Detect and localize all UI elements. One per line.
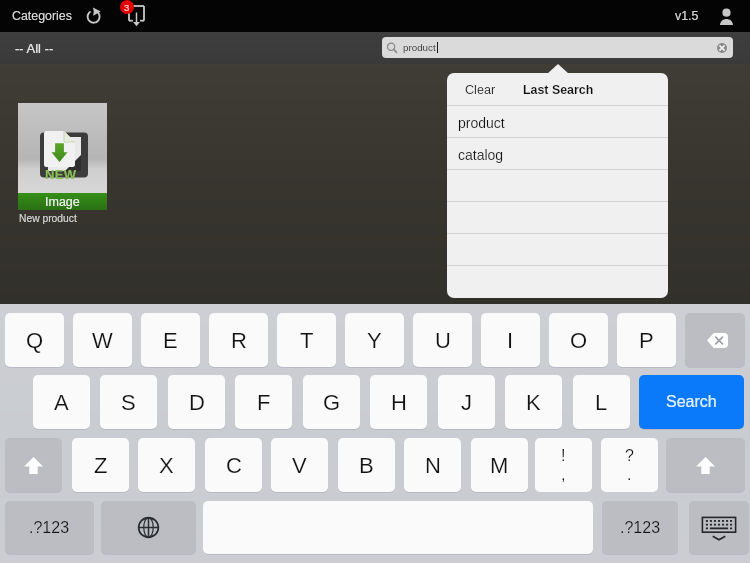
button[interactable]: Search xyxy=(639,375,744,429)
staticText: J xyxy=(461,390,472,415)
button[interactable]: C xyxy=(205,438,262,492)
staticText: F xyxy=(257,390,271,415)
staticText: catalog xyxy=(458,147,504,163)
staticText: A xyxy=(54,390,69,415)
button[interactable]: U xyxy=(413,313,472,367)
staticText: O xyxy=(570,328,588,353)
staticText: v1.5 xyxy=(675,9,699,23)
staticText: Search xyxy=(666,393,717,411)
staticText: Y xyxy=(367,328,382,353)
staticText: U xyxy=(435,328,451,353)
staticText: Last Search xyxy=(523,83,594,97)
staticText: R xyxy=(231,328,247,353)
staticText: ! xyxy=(561,447,566,465)
staticText: 3 xyxy=(124,2,130,13)
button[interactable]: -- All -- xyxy=(0,36,64,61)
staticText: -- All -- xyxy=(15,41,54,56)
staticText: L xyxy=(595,390,608,415)
button[interactable]: product xyxy=(447,106,668,137)
staticText: NEW xyxy=(45,167,77,182)
staticText: New product xyxy=(19,213,77,225)
button[interactable]: Z xyxy=(72,438,129,492)
button[interactable]: V xyxy=(271,438,328,492)
button[interactable]: Hide keyboard xyxy=(689,501,749,554)
button[interactable]: NEW xyxy=(18,103,107,210)
button[interactable]: .?123 xyxy=(5,501,94,554)
button[interactable] xyxy=(447,266,668,297)
button[interactable]: R xyxy=(209,313,268,367)
button[interactable]: T xyxy=(277,313,336,367)
staticText: product xyxy=(403,42,436,53)
button[interactable]: .?123 xyxy=(602,501,678,554)
staticText: Clear xyxy=(465,83,496,97)
staticText: I xyxy=(507,328,514,353)
staticText: S xyxy=(121,390,136,415)
staticText: Image xyxy=(45,195,80,209)
button[interactable]: N xyxy=(404,438,461,492)
button[interactable]: ! xyxy=(535,438,592,492)
button[interactable]: L xyxy=(573,375,630,429)
staticText: .?123 xyxy=(29,519,70,537)
button[interactable]: Backspace xyxy=(685,313,745,367)
button[interactable]: O xyxy=(549,313,608,367)
button[interactable]: Shift xyxy=(666,438,745,492)
button[interactable]: Clear xyxy=(458,78,503,102)
staticText: E xyxy=(163,328,178,353)
button[interactable]: Shift xyxy=(5,438,62,492)
staticText: P xyxy=(639,328,654,353)
staticText: .?123 xyxy=(620,519,661,537)
button[interactable]: catalog xyxy=(447,138,668,169)
button[interactable]: I xyxy=(481,313,540,367)
button[interactable]: W xyxy=(73,313,132,367)
button[interactable]: product xyxy=(382,37,733,58)
staticText: W xyxy=(92,328,113,353)
button[interactable]: X xyxy=(138,438,195,492)
staticText: C xyxy=(226,453,242,478)
button[interactable]: Downloads xyxy=(118,0,148,32)
button[interactable]: v1.5 xyxy=(671,4,703,28)
staticText: H xyxy=(391,390,407,415)
button[interactable]: Y xyxy=(345,313,404,367)
button[interactable]: K xyxy=(505,375,562,429)
button[interactable]: G xyxy=(303,375,360,429)
staticText: K xyxy=(526,390,541,415)
staticText: . xyxy=(627,466,632,484)
button[interactable]: H xyxy=(370,375,427,429)
staticText: Categories xyxy=(12,9,72,23)
button[interactable]: Switch keyboard xyxy=(101,501,196,554)
button[interactable]: Refresh xyxy=(82,4,106,28)
staticText: M xyxy=(490,453,509,478)
button[interactable]: D xyxy=(168,375,225,429)
button[interactable]: S xyxy=(100,375,157,429)
button[interactable]: B xyxy=(338,438,395,492)
staticText: T xyxy=(300,328,314,353)
button[interactable]: E xyxy=(141,313,200,367)
button[interactable]: Q xyxy=(5,313,64,367)
staticText: V xyxy=(292,453,307,478)
button[interactable]: Clear search xyxy=(717,43,727,53)
staticText: Z xyxy=(94,453,108,478)
staticText: , xyxy=(561,466,566,484)
staticText: N xyxy=(425,453,441,478)
staticText: B xyxy=(359,453,374,478)
staticText: Q xyxy=(26,328,44,353)
button[interactable]: P xyxy=(617,313,676,367)
staticText: X xyxy=(159,453,174,478)
staticText: ? xyxy=(625,447,634,465)
button[interactable]: ? xyxy=(601,438,658,492)
staticText: D xyxy=(189,390,205,415)
button[interactable]: A xyxy=(33,375,90,429)
button[interactable]: Categories xyxy=(6,4,78,28)
button[interactable]: F xyxy=(235,375,292,429)
staticText: product xyxy=(458,115,505,131)
staticText: G xyxy=(323,390,341,415)
button[interactable]: J xyxy=(438,375,495,429)
button[interactable]: Account xyxy=(712,0,740,32)
button[interactable]: M xyxy=(471,438,528,492)
